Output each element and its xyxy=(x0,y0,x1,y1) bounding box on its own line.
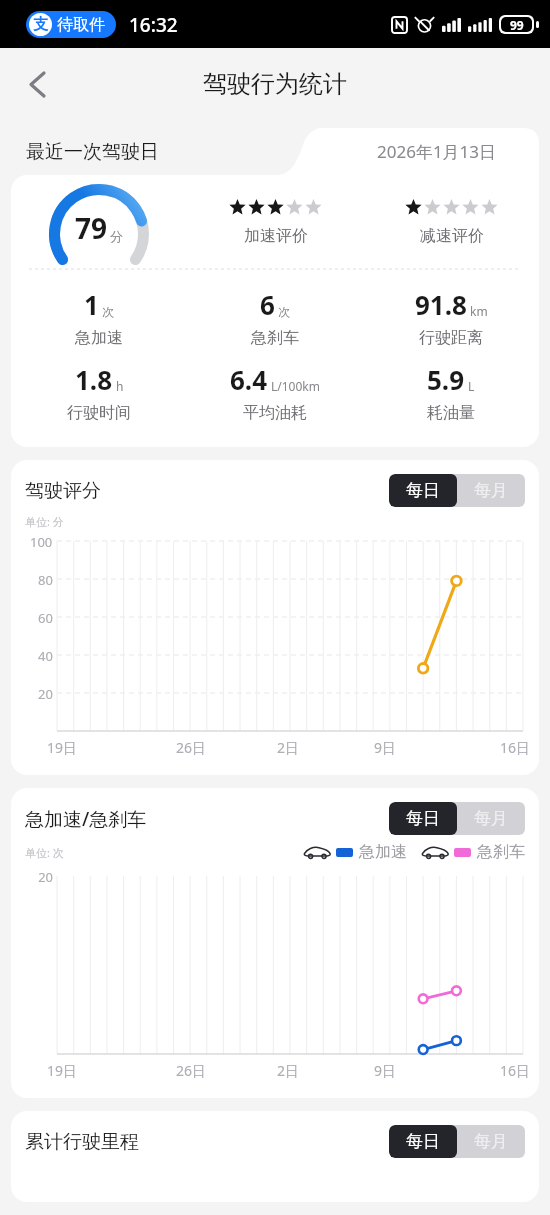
staticText: 16日 xyxy=(500,738,531,757)
staticText: 20 xyxy=(38,685,53,703)
staticText: 19日 xyxy=(47,738,78,757)
staticText: 驾驶评分 xyxy=(25,479,101,503)
button[interactable]: 每日 xyxy=(389,474,457,507)
staticText: 每月 xyxy=(474,480,508,501)
staticText: 100 xyxy=(30,533,53,551)
staticText: 16日 xyxy=(500,1061,531,1080)
staticText: 1.8 xyxy=(75,362,113,397)
staticText: 急刹车 xyxy=(477,842,525,862)
staticText: 支 xyxy=(33,15,48,34)
button[interactable]: 每日 xyxy=(389,1125,457,1158)
staticText: km xyxy=(470,303,488,319)
staticText: 减速评价 xyxy=(420,226,484,246)
staticText: 每日 xyxy=(406,1131,440,1152)
staticText: 9日 xyxy=(374,738,397,757)
staticText: 待取件 xyxy=(57,15,105,35)
staticText: 次 xyxy=(278,304,290,319)
staticText: 行驶时间 xyxy=(67,403,131,423)
staticText: h xyxy=(116,378,124,394)
staticText: 急加速 xyxy=(359,842,407,862)
staticText: 次 xyxy=(102,304,114,319)
staticText: 单位: 次 xyxy=(25,845,64,860)
staticText: 急刹车 xyxy=(251,328,299,348)
staticText: 40 xyxy=(38,647,53,665)
staticText: 分 xyxy=(110,228,123,244)
staticText: L xyxy=(468,378,475,394)
staticText: 耗油量 xyxy=(427,403,475,423)
staticText: 累计行驶里程 xyxy=(25,1130,139,1154)
staticText: 79 xyxy=(75,209,108,247)
staticText: 6 xyxy=(260,287,275,322)
staticText: 平均油耗 xyxy=(243,403,307,423)
button[interactable]: 返回 xyxy=(14,61,60,107)
staticText: 每月 xyxy=(474,808,508,829)
staticText: 5.9 xyxy=(427,362,465,397)
staticText: 20 xyxy=(23,868,53,886)
staticText: 26日 xyxy=(176,1061,207,1080)
staticText: 每日 xyxy=(406,480,440,501)
button[interactable]: 每月 xyxy=(457,474,525,507)
staticText: 单位: 分 xyxy=(25,514,64,529)
button[interactable]: 每月 xyxy=(457,802,525,835)
staticText: 6.4 xyxy=(230,362,268,397)
staticText: 1 xyxy=(84,287,99,322)
staticText: 19日 xyxy=(47,1061,78,1080)
staticText: L/100km xyxy=(271,378,320,394)
staticText: 每月 xyxy=(474,1131,508,1152)
staticText: 80 xyxy=(38,571,53,589)
staticText: 9日 xyxy=(374,1061,397,1080)
staticText: 2日 xyxy=(277,738,300,757)
staticText: 急加速 xyxy=(75,328,123,348)
staticText: 99 xyxy=(510,17,524,32)
staticText: 2日 xyxy=(277,1061,300,1080)
staticText: 行驶距离 xyxy=(419,328,483,348)
staticText: 60 xyxy=(38,609,53,627)
button[interactable]: 每日 xyxy=(389,802,457,835)
staticText: 91.8 xyxy=(415,287,467,322)
staticText: 16:32 xyxy=(129,12,178,38)
staticText: 加速评价 xyxy=(244,226,308,246)
staticText: 急加速/急刹车 xyxy=(25,806,147,832)
staticText: 最近一次驾驶日 xyxy=(26,140,159,164)
button[interactable]: 每月 xyxy=(457,1125,525,1158)
staticText: 每日 xyxy=(406,808,440,829)
staticText: 驾驶行为统计 xyxy=(203,69,347,99)
staticText: 26日 xyxy=(176,738,207,757)
staticText: 2026年1月13日 xyxy=(377,140,497,163)
